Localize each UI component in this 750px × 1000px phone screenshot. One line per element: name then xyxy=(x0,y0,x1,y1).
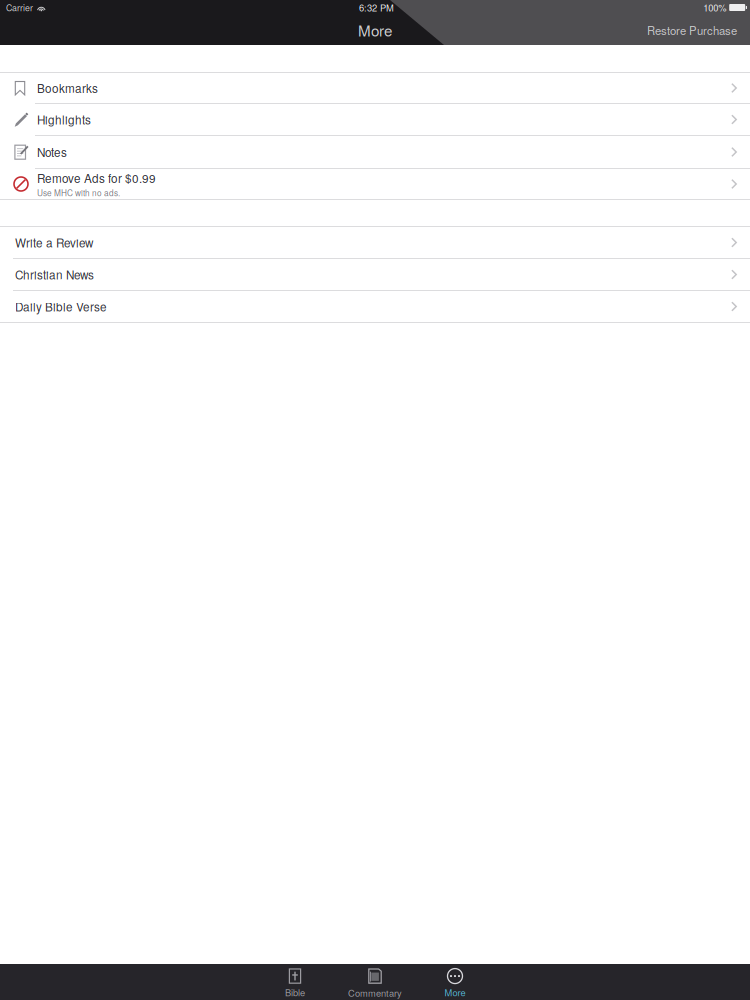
button[interactable]: Christian News xyxy=(0,259,750,290)
button[interactable]: Write a Review xyxy=(0,227,750,258)
staticText: More xyxy=(444,986,465,999)
button[interactable]: Bible xyxy=(255,964,335,1000)
staticText: 6:32 PM xyxy=(359,1,394,14)
staticText: Restore Purchase xyxy=(647,22,737,38)
staticText: Bookmarks xyxy=(37,80,98,96)
button[interactable]: Commentary xyxy=(335,964,415,1000)
staticText: Write a Review xyxy=(15,234,93,251)
button[interactable]: Bookmarks xyxy=(0,73,750,103)
button[interactable]: Notes xyxy=(0,136,750,168)
staticText: Commentary xyxy=(348,986,402,999)
staticText: More xyxy=(358,19,392,41)
button[interactable]: Restore Purchase xyxy=(640,17,744,43)
staticText: Use MHC with no ads. xyxy=(37,187,120,198)
staticText: Highlights xyxy=(37,111,91,128)
staticText: Daily Bible Verse xyxy=(15,298,107,315)
staticText: Remove Ads for $0.99 xyxy=(37,169,156,186)
staticText: Bible xyxy=(285,986,305,999)
button[interactable]: Remove Ads for $0.99 xyxy=(0,169,750,199)
button[interactable]: Daily Bible Verse xyxy=(0,291,750,322)
staticText: Carrier xyxy=(6,1,33,14)
button[interactable]: More xyxy=(415,964,495,1000)
staticText: 100% xyxy=(703,1,726,14)
staticText: Christian News xyxy=(15,266,94,283)
button[interactable]: Highlights xyxy=(0,104,750,135)
staticText: Notes xyxy=(37,144,67,160)
